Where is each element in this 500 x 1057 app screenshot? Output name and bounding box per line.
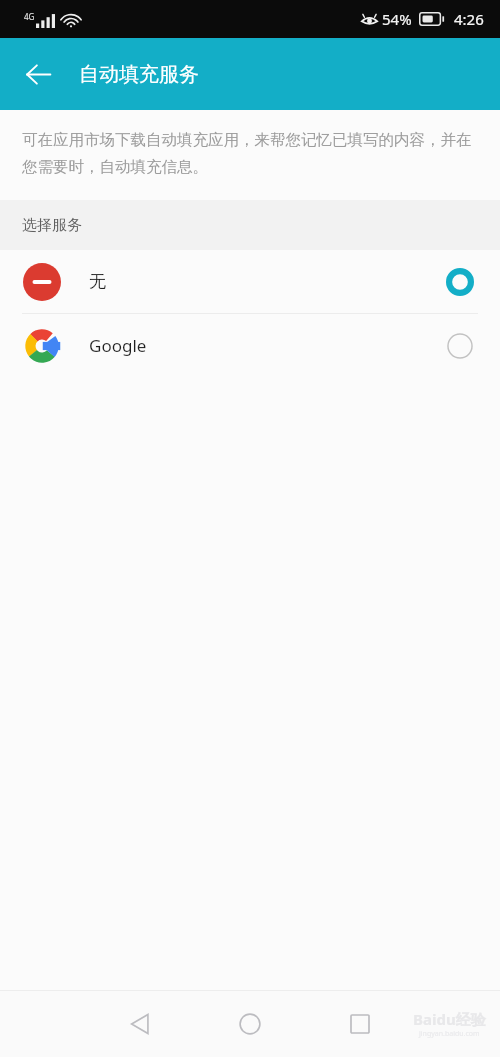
staticText: 4:26 (454, 9, 484, 29)
staticText: jingyan.baidu.com (419, 1029, 480, 1039)
staticText: Google (89, 334, 147, 357)
staticText: 4G (24, 11, 35, 22)
staticText: 可在应用市场下载自动填充应用，来帮您记忆已填写的内容，并在您需要时，自动填充信息… (22, 130, 480, 177)
staticText: Baidu经验 (413, 1009, 486, 1029)
staticText: 无 (89, 271, 106, 292)
button[interactable]: Back (14, 50, 62, 98)
staticText: 自动填充服务 (79, 62, 199, 87)
button[interactable]: 无 (0, 250, 500, 313)
button[interactable]: Google (0, 314, 500, 377)
staticText: 选择服务 (22, 216, 82, 235)
button[interactable]: Recents (330, 994, 390, 1054)
button[interactable]: Home (220, 994, 280, 1054)
staticText: 54% (382, 9, 412, 29)
button[interactable]: Back (110, 994, 170, 1054)
